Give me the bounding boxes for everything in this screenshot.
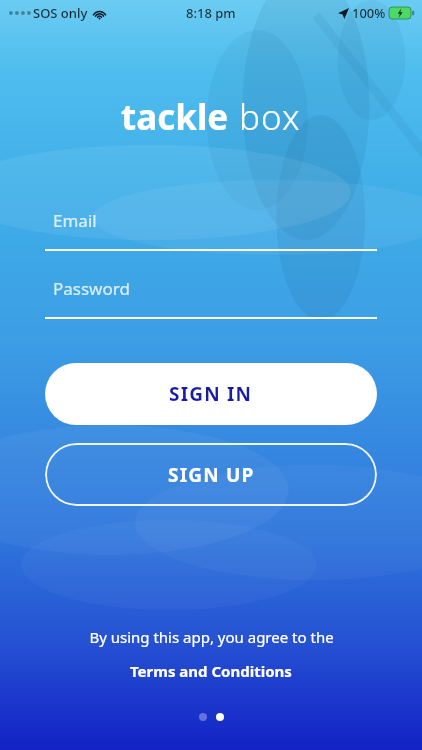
button[interactable]: Terms and Conditions [124, 659, 298, 683]
button[interactable]: Page 1 [199, 713, 207, 721]
staticText: Terms and Conditions [130, 661, 292, 681]
staticText: By using this app, you agree to the [89, 627, 334, 647]
staticText: 100% [352, 4, 386, 22]
button[interactable]: Page 2, current [216, 713, 224, 721]
staticText: Email [53, 209, 97, 232]
staticText: tackle [121, 93, 229, 141]
button[interactable]: Email [45, 209, 377, 251]
button[interactable]: SIGN IN [45, 363, 377, 425]
staticText: SIGN UP [168, 462, 255, 488]
button[interactable]: Password [45, 277, 377, 319]
staticText: 8:18 pm [186, 4, 236, 22]
button[interactable]: SIGN UP [45, 443, 377, 506]
staticText: Password [53, 277, 130, 300]
staticText: SOS only [33, 4, 88, 22]
staticText: box [239, 93, 301, 141]
staticText: SIGN IN [169, 381, 253, 407]
